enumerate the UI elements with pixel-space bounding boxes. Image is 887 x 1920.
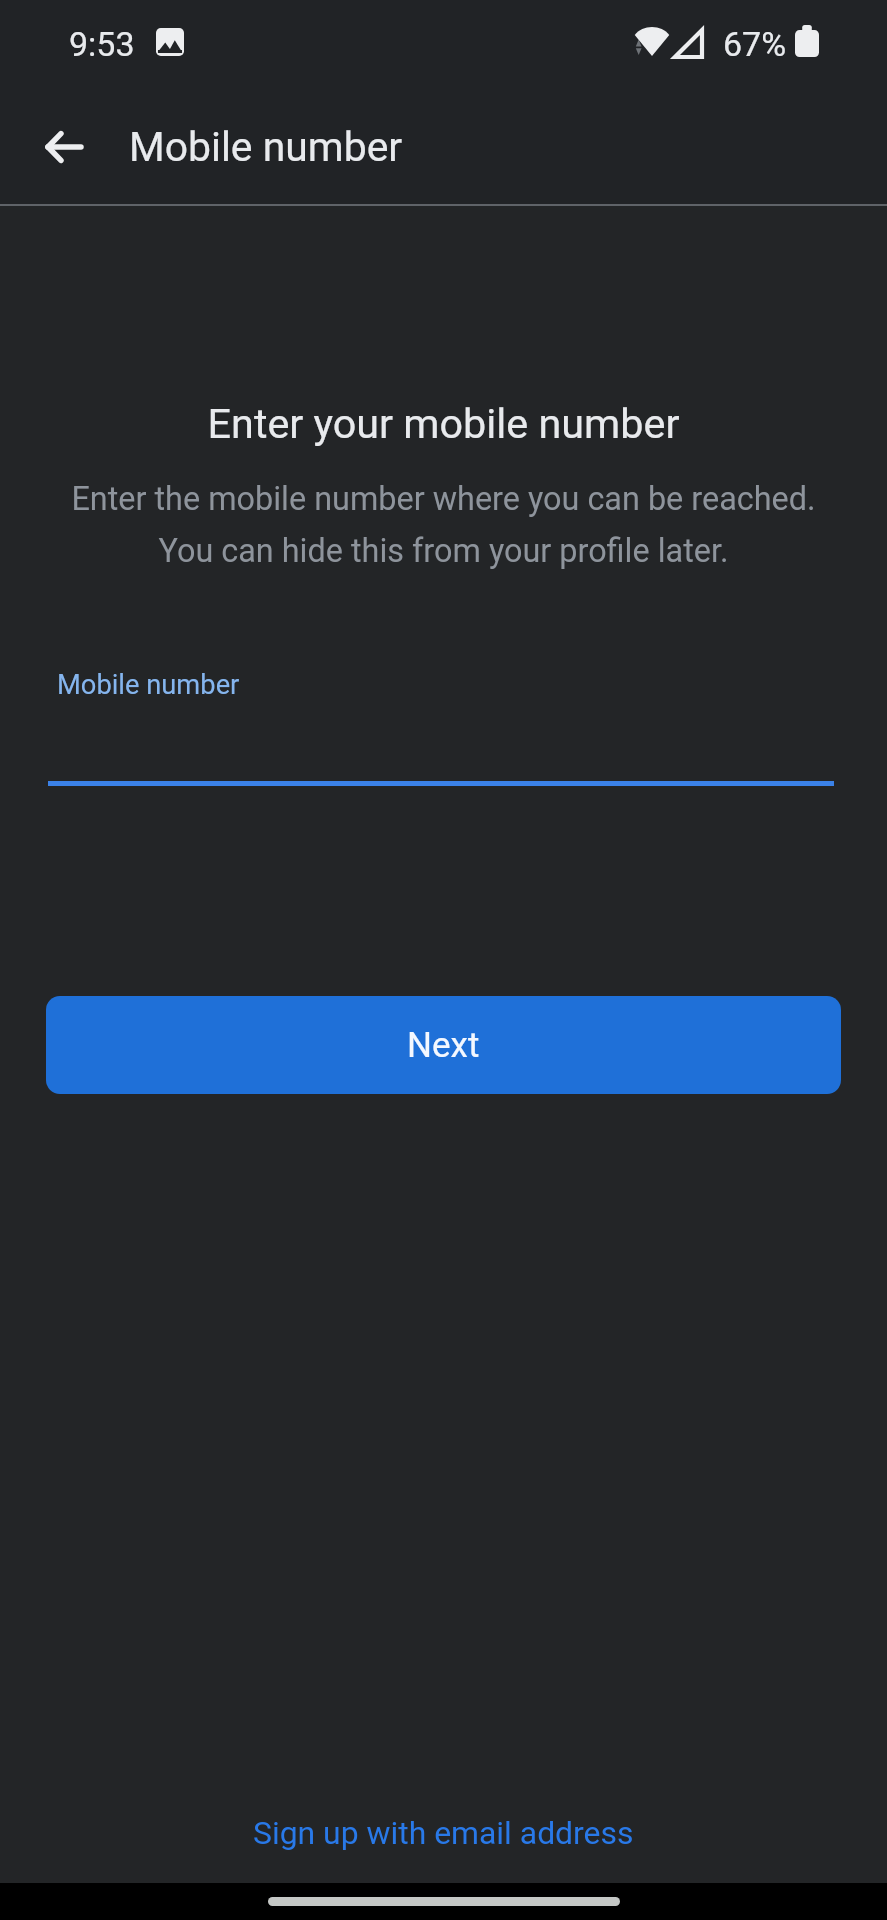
staticText: Enter the mobile number where you can be… xyxy=(0,480,887,570)
staticText: Mobile number xyxy=(129,123,403,171)
staticText: Next xyxy=(407,1025,480,1066)
staticText: Mobile number xyxy=(57,669,240,701)
staticText: Sign up with email address xyxy=(253,1814,634,1851)
staticText: 9:53 xyxy=(69,24,135,64)
button[interactable]: Sign up with email address xyxy=(0,1805,887,1859)
staticText: Enter your mobile number xyxy=(0,400,887,448)
button[interactable]: Next xyxy=(46,996,841,1094)
button[interactable]: Back xyxy=(25,108,103,186)
staticText: 67% xyxy=(723,24,787,64)
